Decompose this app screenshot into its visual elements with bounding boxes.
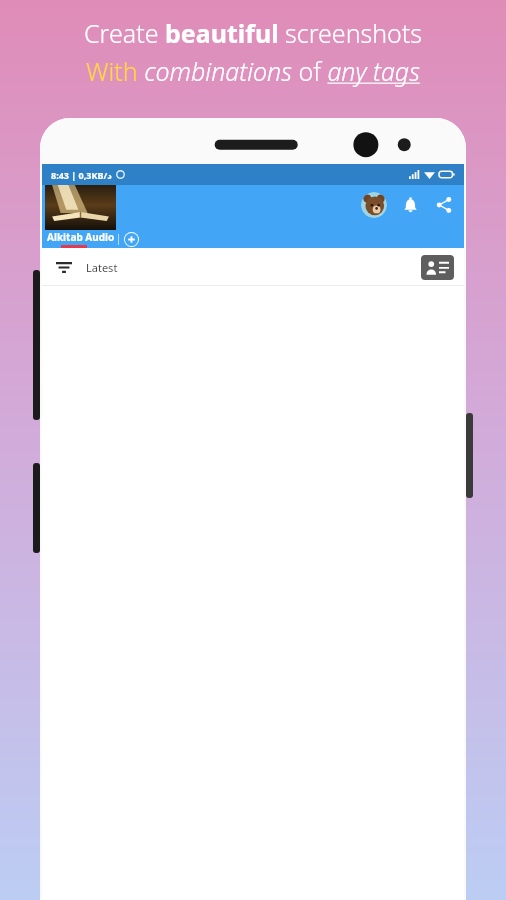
staticText: Alkitab Audio: [47, 230, 115, 244]
button[interactable]: Share: [432, 193, 456, 217]
button[interactable]: Latest: [52, 256, 122, 279]
button[interactable]: Contacts: [421, 255, 454, 280]
staticText: Create beautiful screenshots: [84, 16, 423, 50]
button[interactable]: Profile: [361, 192, 387, 218]
staticText: 8:43 | 0,3KB/د: [51, 169, 112, 181]
staticText: With combinations of any tags: [86, 54, 420, 88]
button[interactable]: Notifications: [398, 193, 422, 217]
button[interactable]: Add: [124, 232, 139, 247]
button[interactable]: Alkitab Audio: [42, 185, 139, 248]
staticText: Latest: [86, 260, 118, 275]
